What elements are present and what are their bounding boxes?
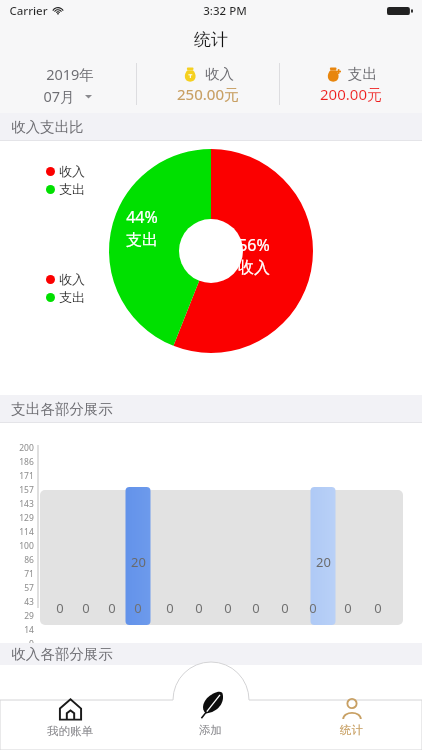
staticText: 157 [19, 484, 34, 496]
staticText: 支出 [348, 65, 377, 83]
staticText: 44% [126, 206, 158, 228]
staticText: 0 [166, 599, 174, 617]
staticText: 56% [238, 234, 270, 256]
staticText: Carrier [9, 3, 48, 19]
staticText: 29 [24, 610, 34, 622]
staticText: 0 [344, 599, 352, 617]
other: 统计 [341, 698, 363, 720]
staticText: 收入 [59, 163, 85, 179]
staticText: 收入 [59, 271, 85, 287]
staticText: 250.00元 [177, 84, 239, 104]
other: 添加 [196, 690, 226, 720]
staticText: 100 [19, 540, 34, 552]
staticText: 07月 [43, 86, 75, 106]
staticText: 14 [24, 624, 34, 636]
staticText: 0 [224, 599, 232, 617]
staticText: 0 [134, 599, 142, 617]
staticText: 86 [24, 554, 34, 566]
staticText: 143 [19, 498, 34, 510]
staticText: 2019年 [46, 64, 94, 84]
staticText: 支出各部分展示 [11, 400, 113, 418]
staticText: 71 [24, 568, 34, 580]
staticText: 0 [29, 638, 34, 650]
staticText: 0 [56, 599, 64, 617]
staticText: 0 [82, 599, 90, 617]
button[interactable]: 支出 [280, 56, 422, 113]
staticText: 0 [281, 599, 289, 617]
staticText: 200.00元 [320, 84, 382, 104]
staticText: 统计 [194, 29, 228, 50]
staticText: 统计 [340, 723, 363, 737]
staticText: 支出 [59, 181, 85, 197]
button[interactable]: 收入 [137, 56, 279, 113]
staticText: 收入 [238, 258, 270, 278]
button[interactable]: 添加 [140, 690, 281, 750]
other: 我的账单 [59, 698, 82, 721]
staticText: 186 [19, 456, 34, 468]
staticText: 114 [19, 526, 34, 538]
staticText: 171 [19, 470, 34, 482]
staticText: 43 [24, 596, 34, 608]
staticText: 支出 [59, 289, 85, 305]
staticText: 收入支出比 [11, 118, 84, 136]
button[interactable]: 统计 [281, 690, 422, 750]
staticText: 收入各部分展示 [11, 645, 113, 663]
staticText: 收入 [205, 65, 234, 83]
staticText: 0 [108, 599, 116, 617]
staticText: 添加 [199, 723, 222, 737]
staticText: 20 [131, 553, 146, 571]
staticText: 57 [24, 582, 34, 594]
button[interactable]: 我的账单 [0, 690, 140, 750]
staticText: 20 [316, 553, 331, 571]
staticText: 0 [374, 599, 382, 617]
staticText: 0 [195, 599, 203, 617]
staticText: 129 [19, 512, 34, 524]
button[interactable]: 2019年 [0, 56, 136, 113]
staticText: 200 [19, 442, 34, 454]
staticText: 0 [252, 599, 260, 617]
staticText: 支出 [126, 230, 158, 250]
staticText: 我的账单 [47, 724, 93, 738]
staticText: 3:32 PM [203, 3, 247, 19]
staticText: 0 [309, 599, 317, 617]
